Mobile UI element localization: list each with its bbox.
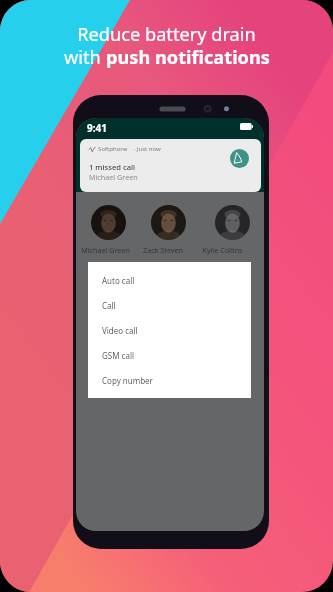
staticText: Copy number: [102, 375, 153, 386]
staticText: with: [64, 45, 106, 70]
staticText: push notifications: [106, 45, 270, 70]
button[interactable]: Michael Green: [91, 205, 126, 240]
staticText: GSM call: [102, 350, 135, 361]
staticText: Reduce battery drain: [77, 22, 256, 47]
staticText: Auto call: [102, 275, 135, 286]
button[interactable]: Kylie Collins: [215, 205, 250, 240]
button[interactable]: Softphone · Just now: [80, 139, 261, 192]
staticText: 1 missed call: [89, 162, 136, 172]
other: Battery: [240, 123, 253, 130]
button[interactable]: Zack Steven: [133, 245, 193, 255]
button[interactable]: Call: [88, 293, 251, 318]
button[interactable]: Kylie Collins: [192, 245, 252, 255]
staticText: Kylie Collins: [202, 245, 243, 255]
button[interactable]: Copy number: [88, 368, 251, 393]
button[interactable]: Video call: [88, 318, 251, 343]
staticText: Michael Green: [89, 172, 138, 182]
staticText: 9:41: [87, 121, 107, 135]
button[interactable]: Softphone: [230, 149, 249, 168]
button[interactable]: Zack Steven: [151, 205, 186, 240]
staticText: Michael Green: [81, 245, 130, 255]
staticText: Call: [102, 300, 116, 311]
button[interactable]: Michael Green: [76, 245, 135, 255]
staticText: Softphone · Just now: [95, 145, 161, 153]
staticText: Zack Steven: [143, 245, 183, 255]
button[interactable]: Auto call: [88, 268, 251, 293]
staticText: Video call: [102, 325, 138, 336]
button[interactable]: GSM call: [88, 343, 251, 368]
